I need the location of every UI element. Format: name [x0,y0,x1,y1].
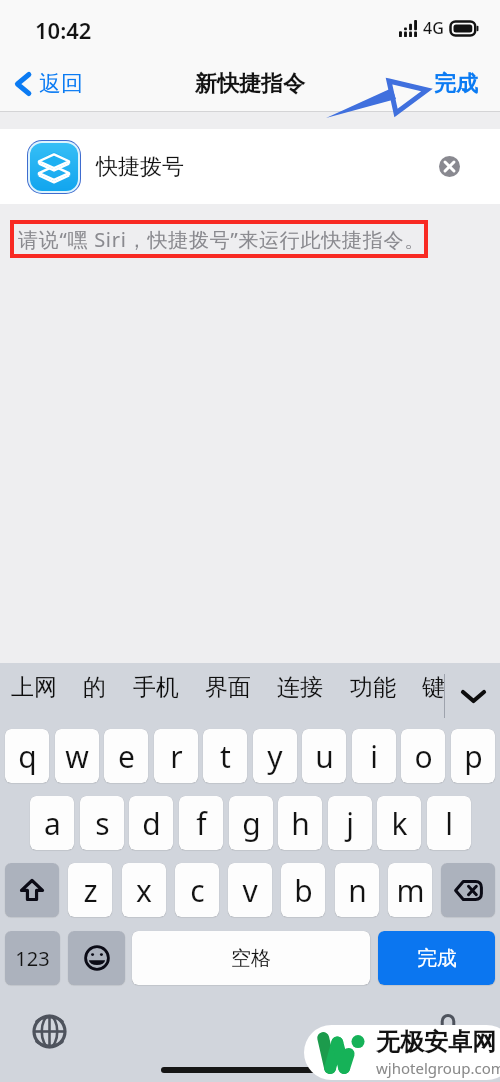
staticText: q [18,736,37,777]
button[interactable]: 123 [5,931,60,985]
button[interactable]: o [401,729,445,783]
staticText: d [142,803,161,844]
staticText: wjhotelgroup.com [376,1058,500,1078]
staticText: j [346,803,354,844]
staticText: 界面 [205,673,251,702]
button[interactable]: 连接 [274,663,326,712]
staticText: 新快捷指令 [195,70,305,98]
button[interactable]: e [104,729,148,783]
button[interactable]: Backspace [441,863,495,917]
button[interactable]: q [5,729,49,783]
staticText: 10:42 [35,15,92,45]
button[interactable]: n [335,863,379,917]
button[interactable]: Hide keyboard [445,663,500,729]
staticText: z [83,870,98,911]
staticText: 空格 [231,946,271,971]
staticText: w [65,736,89,777]
staticText: 无极安卓网 [376,1027,496,1057]
button[interactable]: Clear name [439,156,460,177]
staticText: 快捷拨号 [96,153,184,181]
staticText: 请说“嘿 Siri，快捷拨号”来运行此快捷指令。 [18,226,426,253]
button[interactable]: i [352,729,396,783]
staticText: v [242,870,258,911]
button[interactable]: m [388,863,432,917]
button[interactable]: 完成 [378,931,495,985]
staticText: p [464,736,483,777]
button[interactable]: r [154,729,198,783]
button[interactable]: 的 [80,663,109,712]
button[interactable]: h [278,796,322,850]
button[interactable]: Dictation [431,1012,465,1046]
staticText: 手机 [133,673,179,702]
button[interactable]: t [203,729,247,783]
staticText: r [170,736,183,777]
staticText: 键 [422,673,445,702]
staticText: 完成 [434,70,478,98]
button[interactable]: c [175,863,219,917]
button[interactable]: 空格 [132,931,370,985]
staticText: m [396,870,425,911]
button[interactable]: y [253,729,297,783]
button[interactable]: 功能 [347,663,399,712]
staticText: 完成 [417,946,457,971]
staticText: b [294,870,313,911]
staticText: t [220,736,231,777]
staticText: 123 [15,945,50,972]
button[interactable]: k [377,796,421,850]
button[interactable]: Emoji [68,931,125,985]
button[interactable]: s [80,796,124,850]
button[interactable]: u [302,729,346,783]
staticText: f [196,803,207,844]
button[interactable]: 手机 [130,663,182,712]
staticText: y [267,736,283,777]
button[interactable]: l [427,796,471,850]
button[interactable]: j [328,796,372,850]
button[interactable]: d [129,796,173,850]
staticText: c [190,870,205,911]
staticText: e [118,736,135,777]
button[interactable]: b [281,863,325,917]
button[interactable]: 完成 [412,62,500,106]
button[interactable]: x [122,863,166,917]
button[interactable]: 上网 [8,663,60,712]
staticText: 功能 [350,673,396,702]
button[interactable]: 返回 [0,62,97,106]
staticText: 4G [423,17,444,39]
button[interactable]: a [30,796,74,850]
staticText: n [348,870,367,911]
button[interactable]: f [179,796,223,850]
button[interactable]: Switch keyboard language [32,1014,67,1049]
button[interactable]: g [229,796,273,850]
button[interactable]: 界面 [202,663,254,712]
staticText: 上网 [11,673,57,702]
button[interactable]: z [68,863,112,917]
staticText: g [242,803,261,844]
button[interactable]: 键 [419,663,448,712]
staticText: l [445,803,453,844]
staticText: 的 [83,673,106,702]
staticText: 返回 [39,70,83,98]
staticText: x [136,870,152,911]
staticText: u [315,736,334,777]
button[interactable]: Shift [5,863,59,917]
staticText: h [291,803,310,844]
staticText: 连接 [277,673,323,702]
button[interactable]: w [55,729,99,783]
staticText: a [44,803,61,844]
button[interactable]: p [451,729,495,783]
button[interactable]: v [228,863,272,917]
staticText: k [391,803,408,844]
staticText: s [95,803,110,844]
staticText: o [414,736,433,777]
staticText: i [370,736,378,777]
